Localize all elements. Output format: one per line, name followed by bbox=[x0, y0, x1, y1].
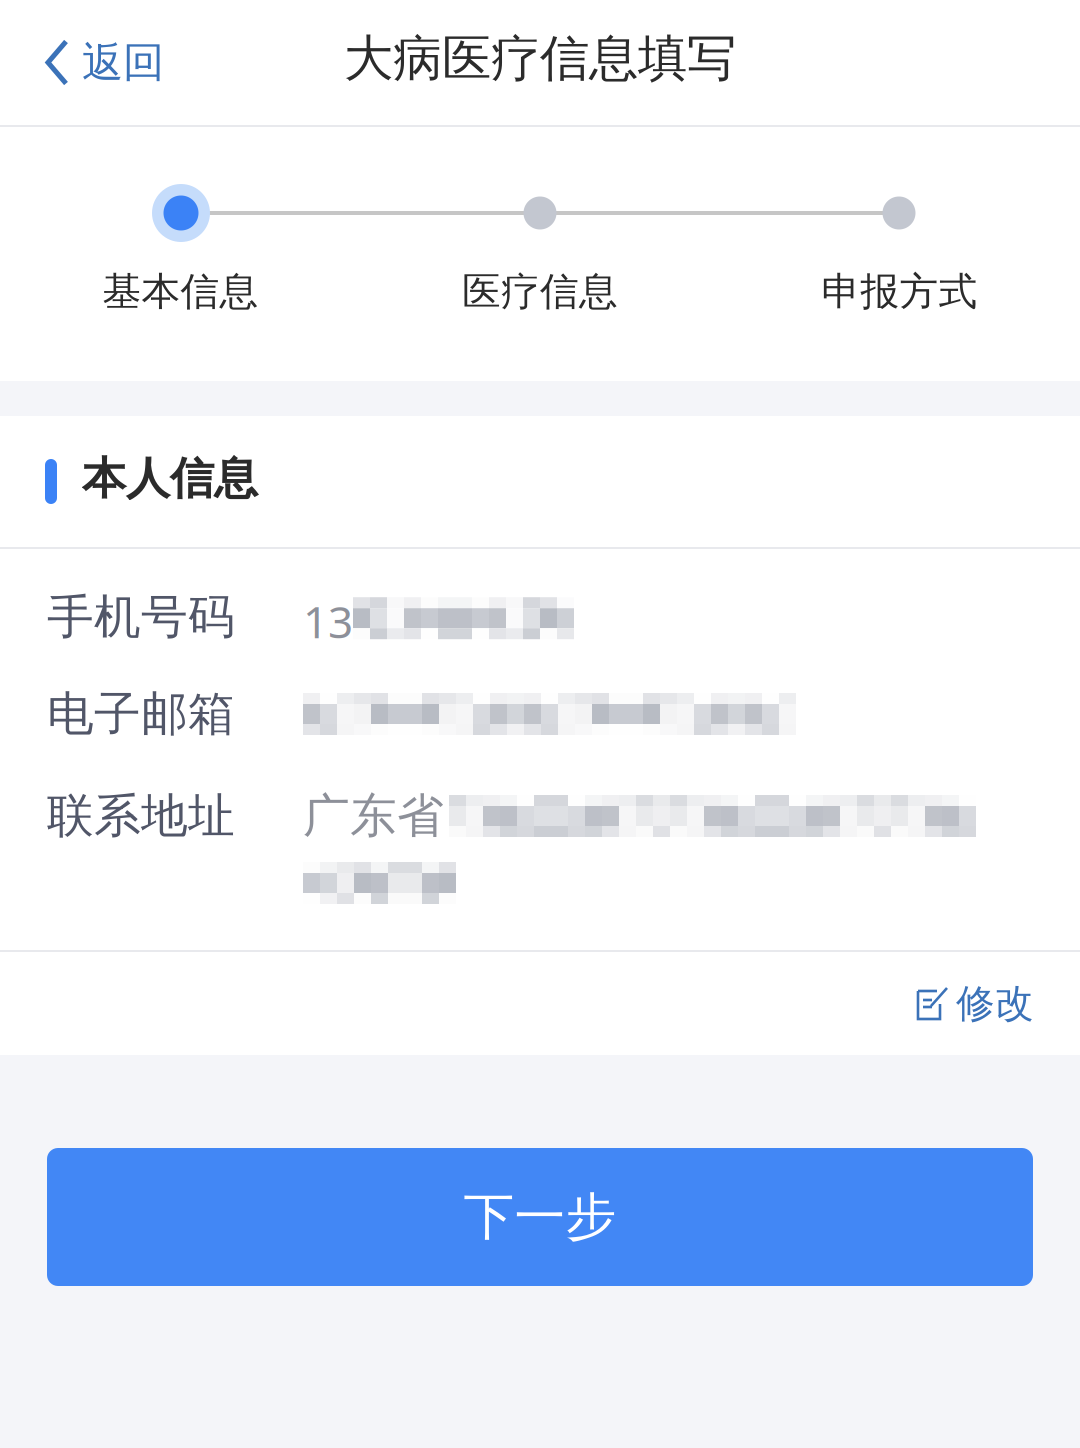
staticText: 基本信息 bbox=[102, 268, 258, 315]
staticText: 本人信息 bbox=[82, 451, 258, 505]
button[interactable]: 下一步 bbox=[47, 1148, 1033, 1286]
staticText: 手机号码 bbox=[47, 588, 235, 646]
staticText: 下一步 bbox=[463, 1186, 616, 1248]
staticText: 13 bbox=[303, 592, 353, 650]
button[interactable]: 修改 bbox=[900, 952, 1050, 1055]
button[interactable]: 返回 bbox=[0, 0, 194, 125]
staticText: 医疗信息 bbox=[462, 268, 618, 315]
staticText: 大病医疗信息填写 bbox=[344, 28, 736, 89]
staticText: 返回 bbox=[82, 37, 164, 88]
staticText: 修改 bbox=[956, 980, 1034, 1027]
staticText: 联系地址 bbox=[47, 787, 235, 845]
staticText: 广东省 bbox=[303, 787, 444, 845]
staticText: 电子邮箱 bbox=[47, 685, 235, 743]
staticText: 申报方式 bbox=[821, 268, 977, 315]
